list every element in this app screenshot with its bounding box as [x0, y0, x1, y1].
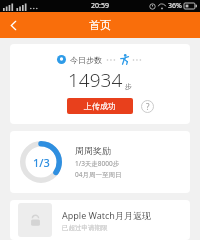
- staticText: ?: [146, 101, 150, 112]
- staticText: 20:59: [91, 1, 109, 11]
- button[interactable]: 1/3: [10, 131, 190, 193]
- staticText: 首页: [89, 18, 111, 32]
- staticText: 1/3天走8000步: [75, 159, 120, 168]
- button[interactable]: 上传成功: [67, 98, 133, 114]
- button[interactable]: Back: [0, 12, 26, 38]
- staticText: Apple Watch月月返现: [62, 209, 151, 221]
- button[interactable]: 今日步数: [10, 44, 190, 124]
- staticText: 36%: [168, 1, 182, 11]
- staticText: 步: [125, 82, 132, 91]
- staticText: 已超过申请期限: [62, 224, 108, 232]
- button[interactable]: Help: [141, 100, 154, 113]
- button[interactable]: Apple Watch月月返现: [10, 200, 190, 240]
- staticText: 今日步数: [70, 55, 102, 65]
- staticText: 1/3: [33, 155, 50, 170]
- staticText: 周周奖励: [75, 145, 111, 156]
- staticText: 04月周一至周日: [75, 170, 122, 179]
- staticText: 14934: [68, 67, 123, 93]
- staticText: 上传成功: [84, 101, 116, 111]
